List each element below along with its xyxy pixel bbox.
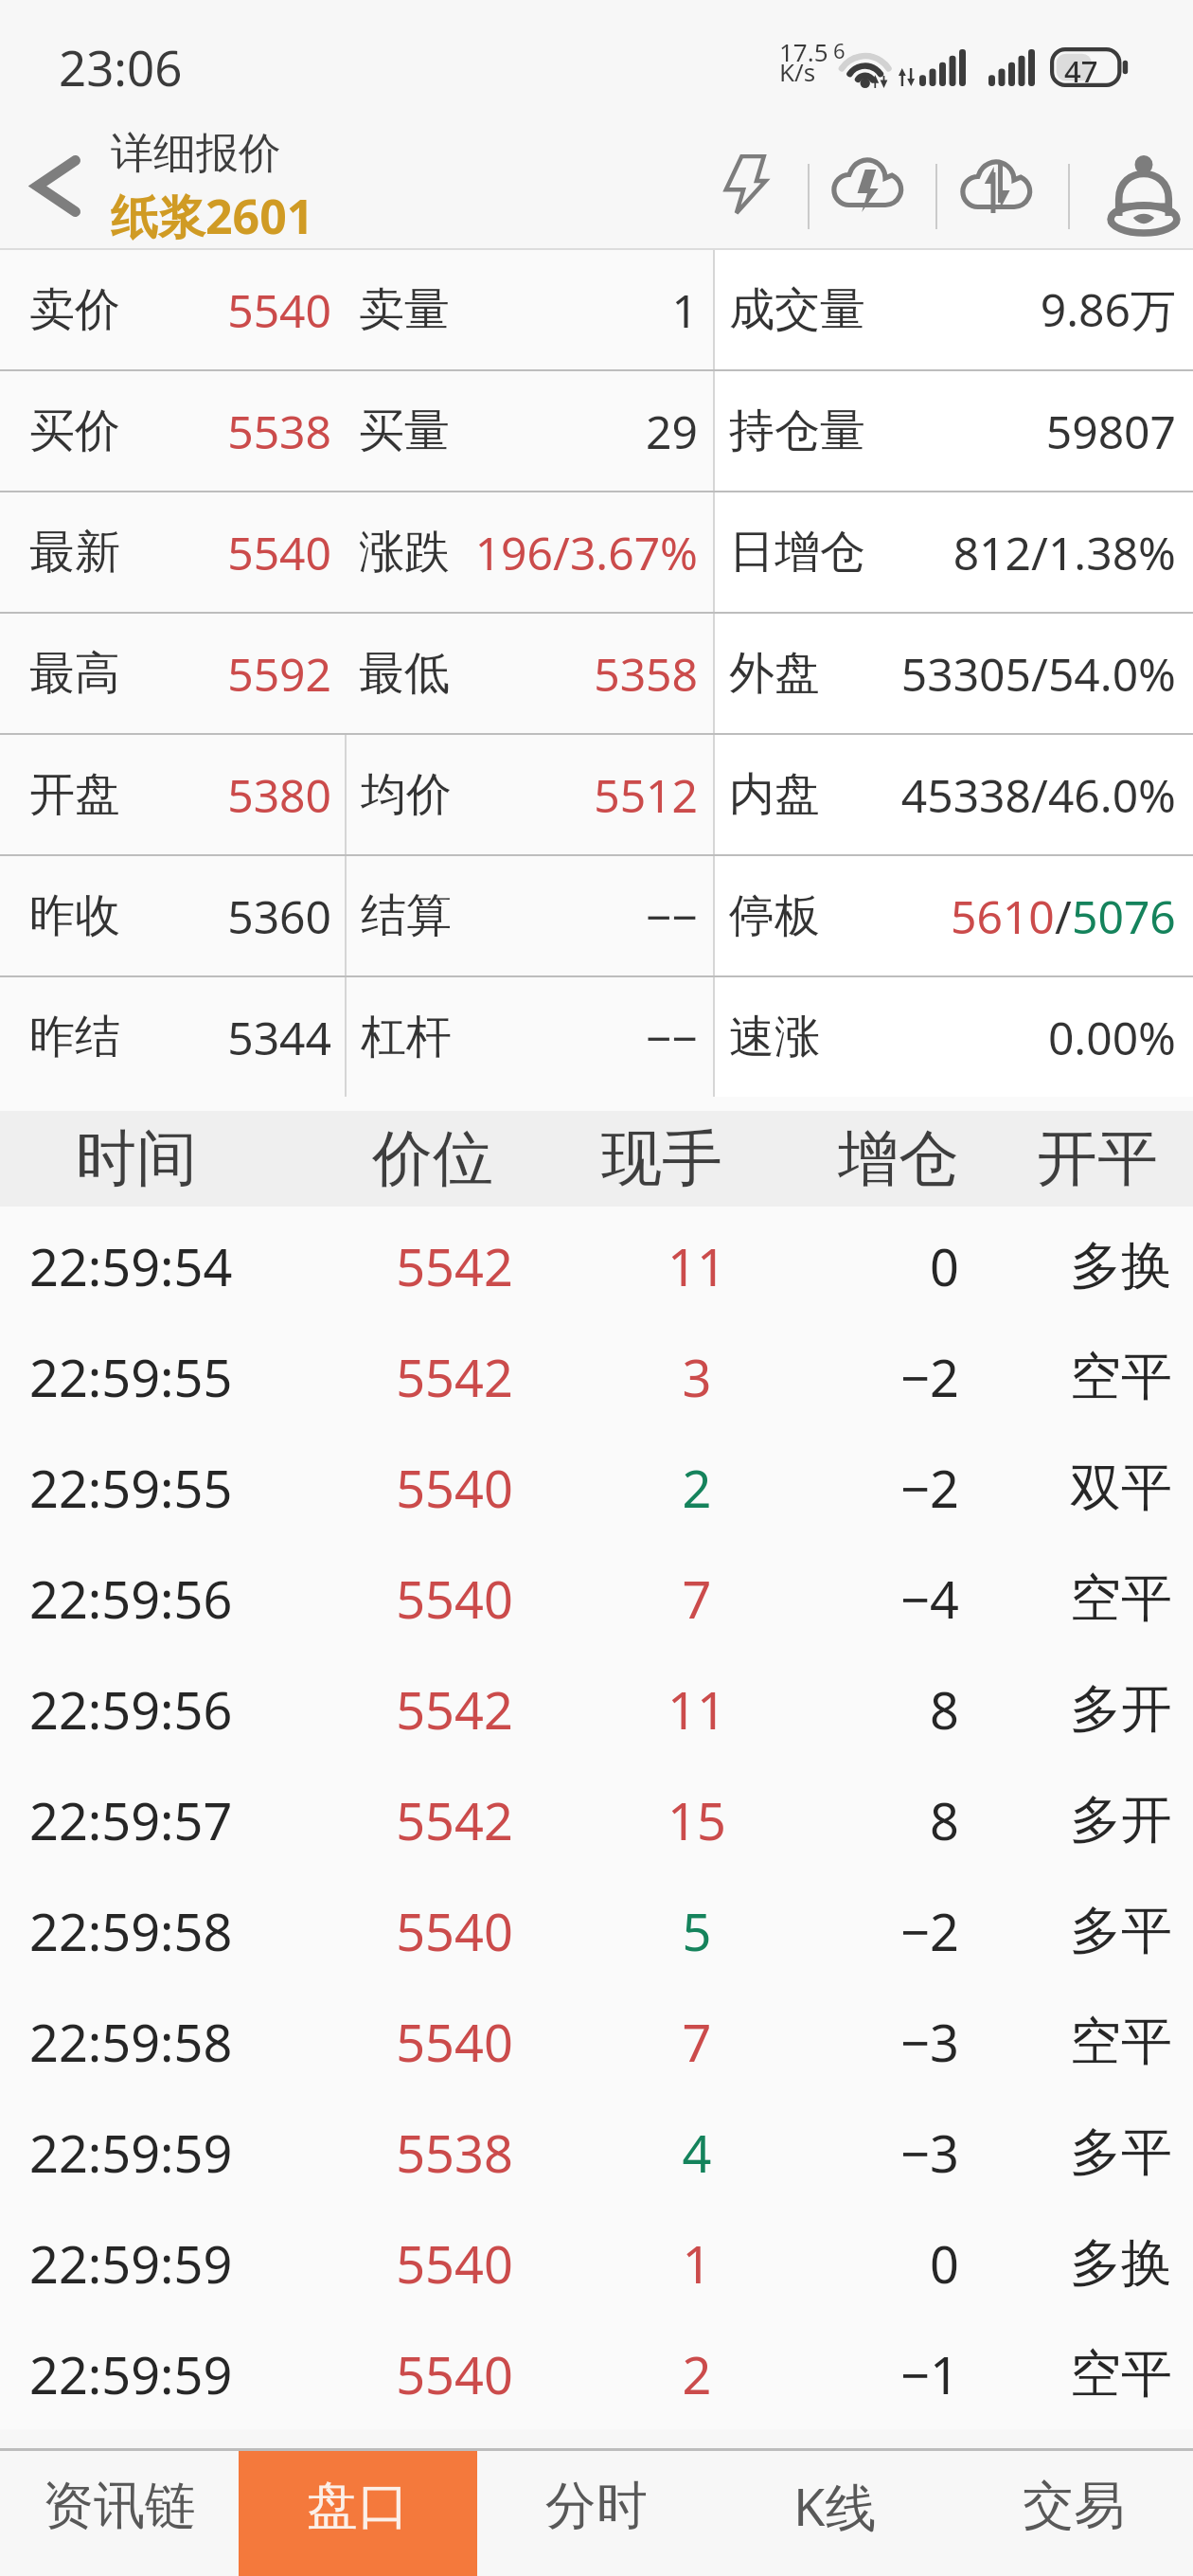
button[interactable]: 22:59:54 (0, 1210, 1193, 1321)
staticText: / (1055, 885, 1072, 947)
staticText: 卖价 (29, 281, 120, 338)
staticText: 多换 (959, 1234, 1172, 1298)
staticText: 29 (345, 401, 698, 462)
staticText: 卖量 (359, 281, 450, 338)
staticText: 空平 (959, 1345, 1172, 1409)
staticText: 0 (769, 2228, 959, 2299)
button[interactable]: 22:59:56 (0, 1543, 1193, 1654)
staticText: 昨结 (29, 1009, 120, 1065)
staticText: 196/3.67% (345, 522, 698, 583)
staticText: 23:06 (59, 34, 183, 99)
staticText: 成交量 (729, 281, 865, 338)
staticText: 5542 (284, 1342, 625, 1412)
button[interactable]: 22:59:58 (0, 1986, 1193, 2097)
staticText: 5512 (347, 764, 698, 826)
staticText: K线 (793, 2471, 877, 2541)
staticText: 22:59:54 (29, 1231, 284, 1301)
staticText: 杠杆 (361, 1009, 452, 1065)
staticText: 交易 (1023, 2474, 1125, 2538)
staticText: 6 (833, 36, 846, 64)
staticText: 3 (625, 1342, 769, 1412)
staticText: 53305/54.0% (715, 643, 1176, 705)
staticText: −1 (769, 2339, 959, 2409)
staticText: 纸浆2601 (111, 184, 314, 248)
staticText: 5540 (0, 279, 331, 341)
staticText: 22:59:57 (29, 1785, 284, 1855)
staticText: 最新 (29, 524, 120, 581)
staticText: −− (347, 1007, 698, 1068)
button[interactable]: 22:59:57 (0, 1764, 1193, 1875)
button[interactable]: 盘口 (239, 2451, 477, 2576)
staticText: 结算 (361, 887, 452, 944)
staticText: 多开 (959, 1677, 1172, 1742)
staticText: 4 (625, 2118, 769, 2188)
staticText: 22:59:59 (29, 2228, 284, 2299)
staticText: 外盘 (729, 645, 820, 702)
staticText: 5360 (0, 885, 331, 947)
staticText: 5540 (284, 1896, 625, 1966)
staticText: 7 (625, 1564, 769, 1634)
staticText: 15 (625, 1785, 769, 1855)
staticText: 5540 (284, 1564, 625, 1634)
button[interactable]: Cloud sync (939, 106, 1060, 250)
button[interactable]: 22:59:55 (0, 1432, 1193, 1543)
staticText: 空平 (959, 2010, 1172, 2074)
staticText: 最低 (359, 645, 450, 702)
staticText: 昨收 (29, 887, 120, 944)
staticText: 详细报价 (111, 127, 281, 181)
button[interactable]: 资讯链 (0, 2451, 239, 2576)
staticText: 5540 (0, 522, 331, 583)
staticText: 22:59:59 (29, 2339, 284, 2409)
staticText: −3 (769, 2118, 959, 2188)
staticText: 22:59:56 (29, 1674, 284, 1744)
staticText: 5538 (0, 401, 331, 462)
staticText: 8 (769, 1785, 959, 1855)
button[interactable]: Cloud alert (811, 106, 933, 250)
staticText: 分时 (545, 2474, 648, 2538)
staticText: 开平 (984, 1120, 1193, 1197)
staticText: 最高 (29, 645, 120, 702)
staticText: 812/1.38% (715, 522, 1176, 583)
staticText: 多平 (959, 1899, 1172, 1963)
staticText: 日增仓 (729, 524, 865, 581)
staticText: 持仓量 (729, 402, 865, 459)
staticText: −3 (769, 2007, 959, 2077)
staticText: 价位 (319, 1120, 546, 1197)
staticText: 5358 (345, 643, 698, 705)
button[interactable]: Back (0, 106, 112, 250)
staticText: 空平 (959, 1566, 1172, 1631)
staticText: 多平 (959, 2120, 1172, 2185)
button[interactable]: 22:59:58 (0, 1875, 1193, 1986)
staticText: 速涨 (729, 1009, 820, 1065)
staticText: 7 (625, 2007, 769, 2077)
staticText: −2 (769, 1896, 959, 1966)
staticText: 5 (625, 1896, 769, 1966)
staticText: 空平 (959, 2342, 1172, 2406)
staticText: 盘口 (307, 2474, 409, 2538)
button[interactable]: 22:59:59 (0, 2208, 1193, 2318)
staticText: 增仓 (785, 1120, 1012, 1197)
staticText: 5592 (0, 643, 331, 705)
staticText: 现手 (548, 1120, 775, 1197)
button[interactable]: 22:59:59 (0, 2097, 1193, 2208)
staticText: 时间 (23, 1120, 250, 1197)
staticText: 5540 (284, 2007, 625, 2077)
button[interactable]: 22:59:55 (0, 1321, 1193, 1432)
staticText: 5610 (951, 885, 1055, 947)
staticText: 5542 (284, 1674, 625, 1744)
staticText: 买量 (359, 402, 450, 459)
button[interactable]: 交易 (954, 2451, 1193, 2576)
staticText: 买价 (29, 402, 120, 459)
staticText: 22:59:58 (29, 2007, 284, 2077)
button[interactable]: 22:59:59 (0, 2318, 1193, 2429)
button[interactable]: K线 (716, 2451, 954, 2576)
button[interactable]: 分时 (477, 2451, 716, 2576)
button[interactable]: Flash (684, 106, 805, 250)
staticText: 17.5 (779, 35, 828, 68)
button[interactable]: Alarm (1072, 106, 1193, 250)
staticText: 5380 (0, 764, 331, 826)
staticText: 5542 (284, 1785, 625, 1855)
button[interactable]: 22:59:56 (0, 1654, 1193, 1764)
staticText: 双平 (959, 1456, 1172, 1520)
staticText: 5540 (284, 2339, 625, 2409)
